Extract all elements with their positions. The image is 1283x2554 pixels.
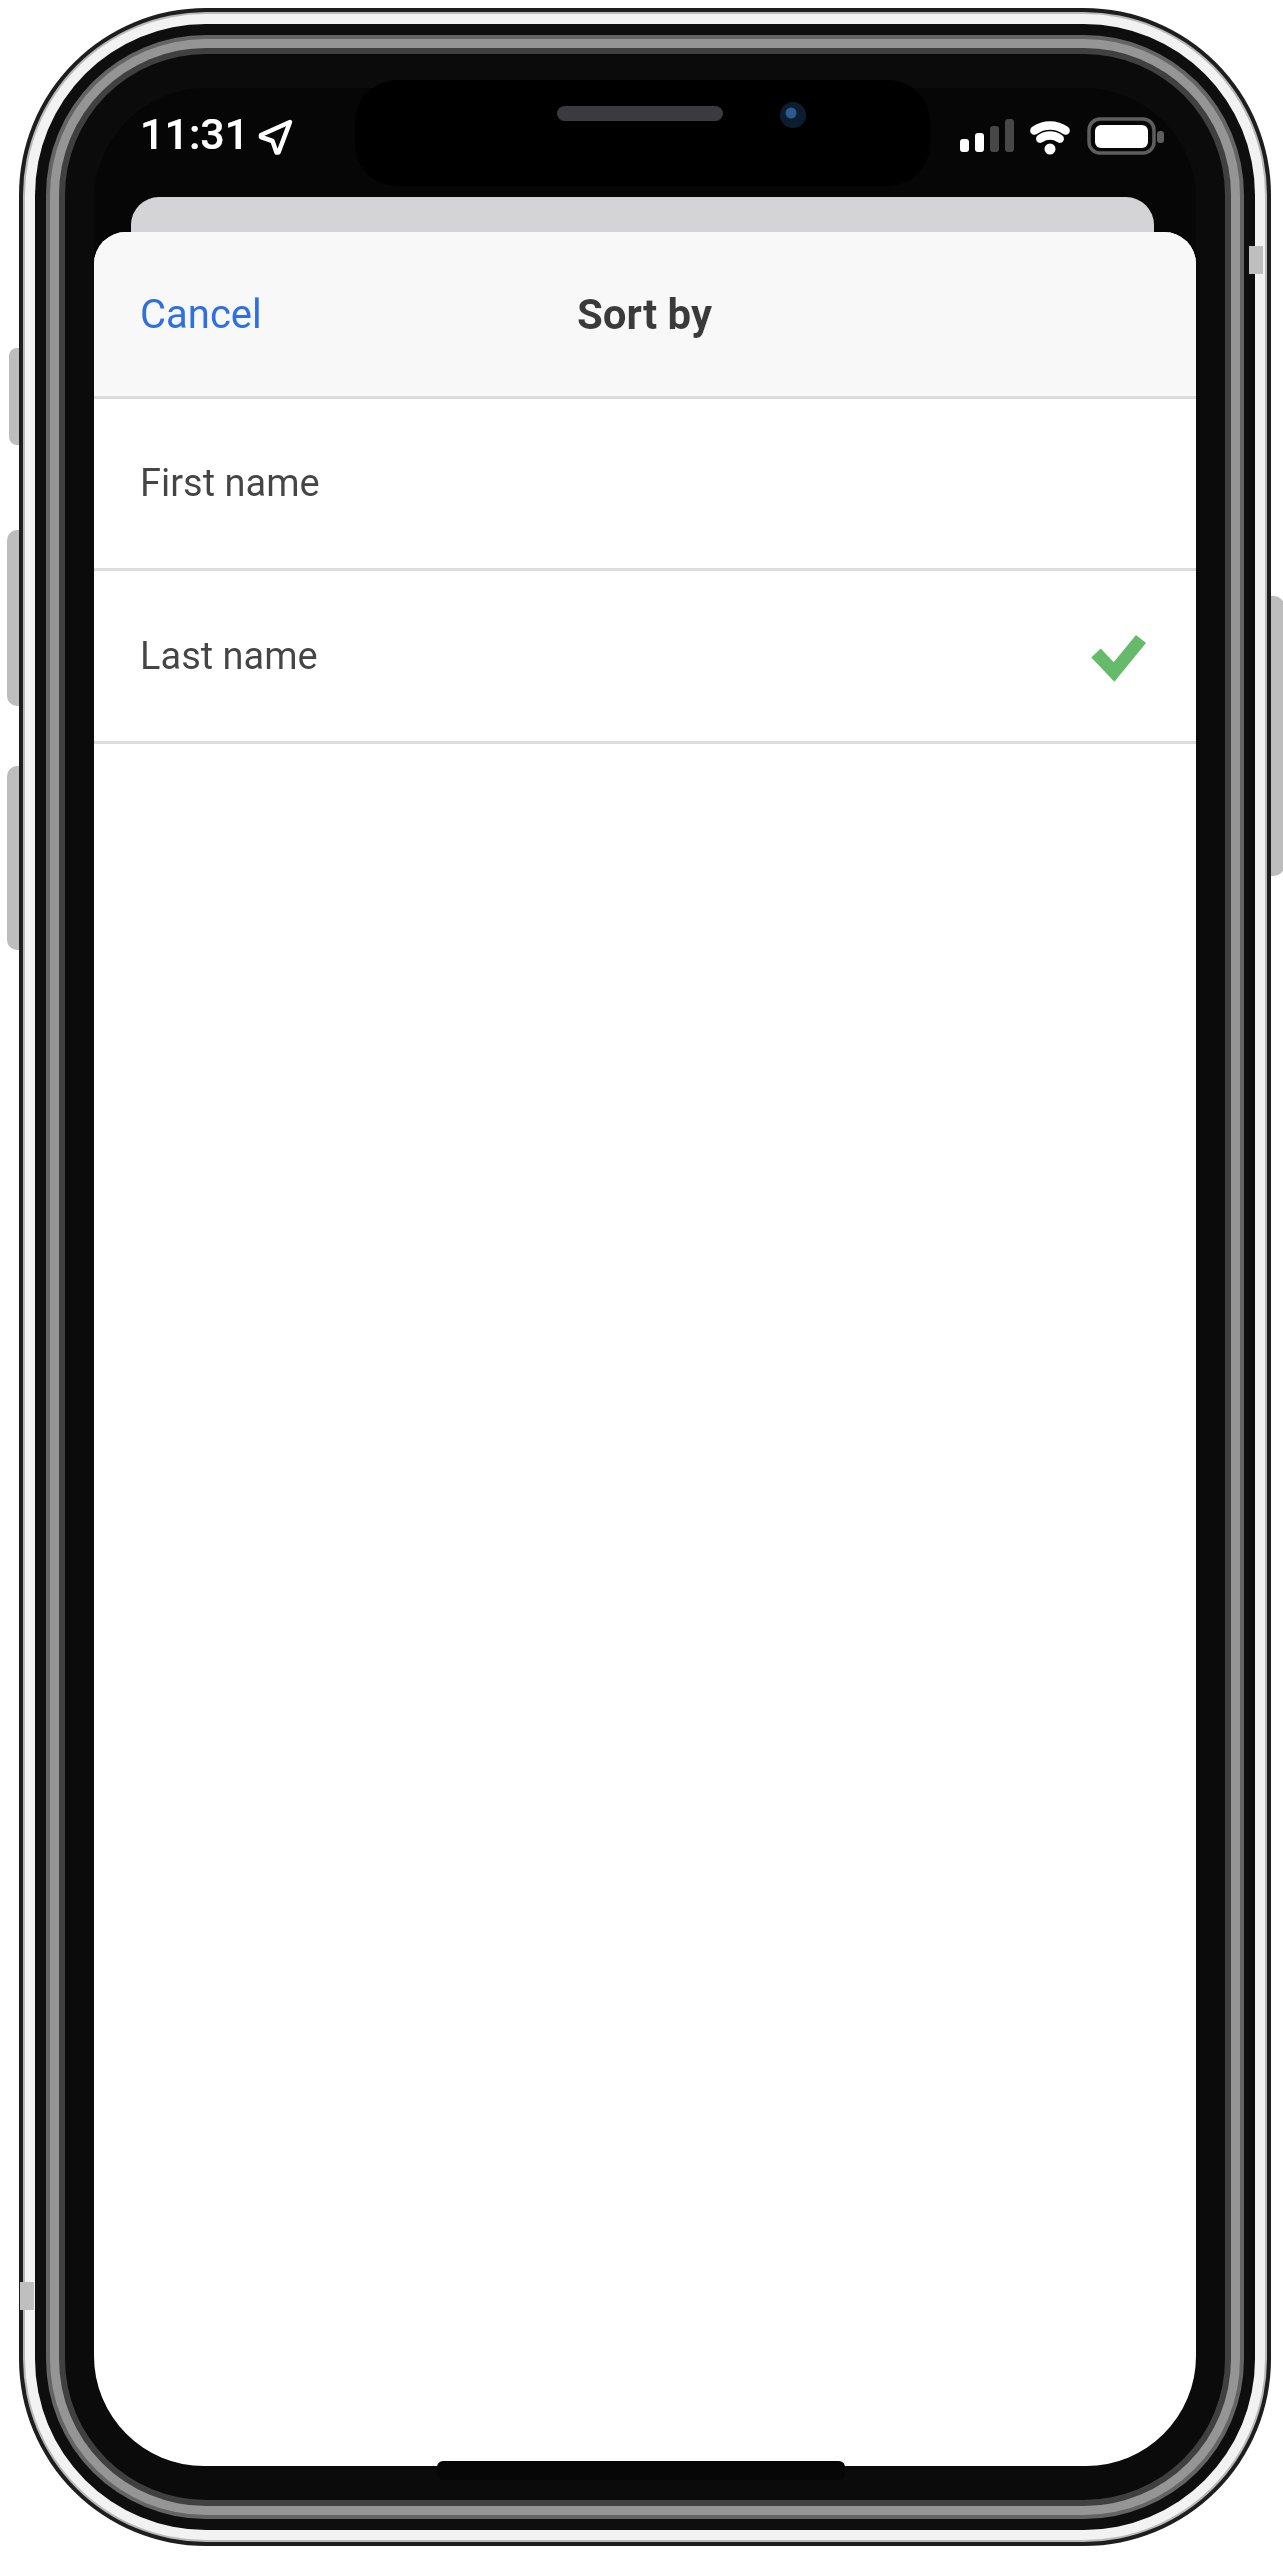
staticText: 11:31 bbox=[140, 109, 250, 159]
staticText: First name bbox=[140, 461, 320, 506]
button[interactable]: Cancel bbox=[94, 232, 322, 396]
button[interactable]: Last name bbox=[94, 571, 1196, 741]
staticText: Cancel bbox=[140, 291, 262, 338]
staticText: Last name bbox=[140, 634, 318, 679]
button[interactable]: First name bbox=[94, 399, 1196, 568]
staticText: Sort by bbox=[577, 290, 713, 339]
